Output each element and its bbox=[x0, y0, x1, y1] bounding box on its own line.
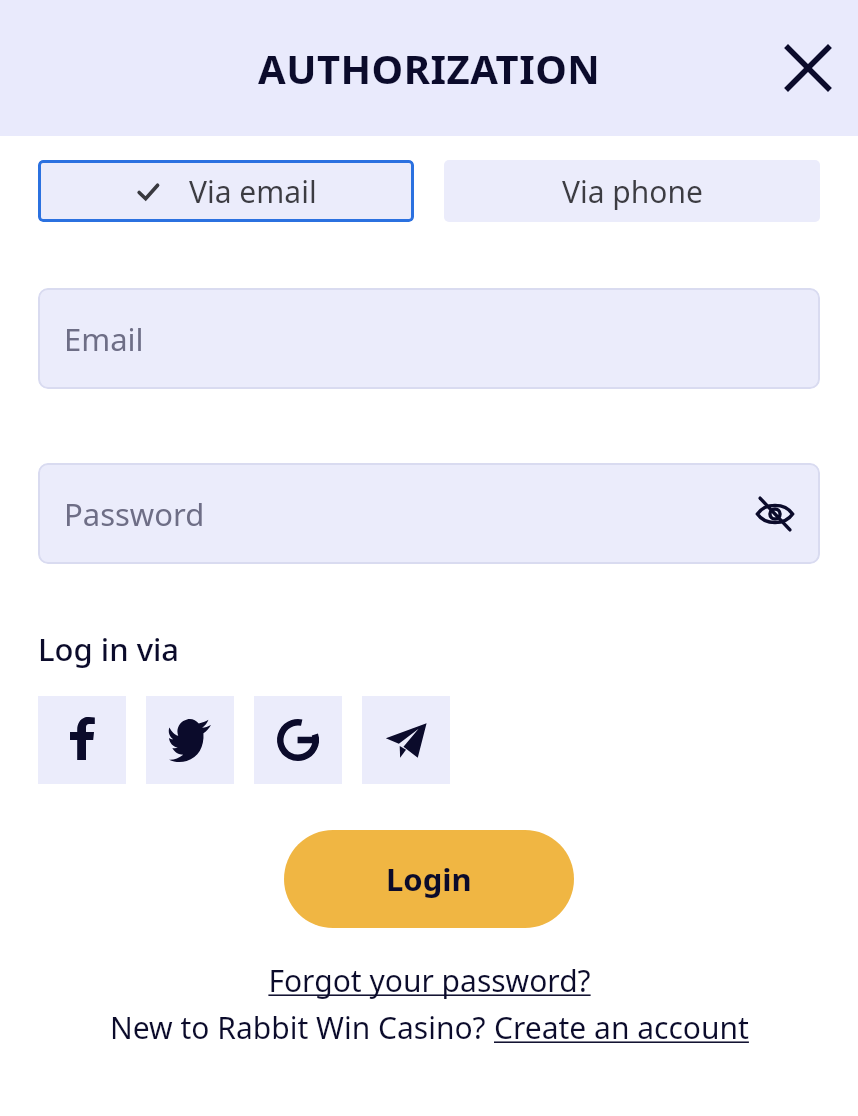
button[interactable]: Email bbox=[38, 288, 820, 389]
button[interactable]: Show password bbox=[744, 483, 806, 545]
staticText: Via email bbox=[189, 171, 317, 212]
button[interactable]: Close bbox=[772, 32, 844, 104]
staticText: New to Rabbit Win Casino? bbox=[110, 1007, 494, 1048]
staticText: AUTHORIZATION bbox=[258, 41, 601, 95]
button[interactable]: Create an account bbox=[494, 1007, 749, 1048]
button[interactable]: Twitter bbox=[146, 696, 234, 784]
button[interactable]: Telegram bbox=[362, 696, 450, 784]
button[interactable]: Login bbox=[284, 830, 574, 928]
staticText: Login bbox=[386, 858, 472, 900]
button[interactable]: Via phone bbox=[444, 160, 820, 222]
button[interactable]: Forgot your password? bbox=[268, 960, 591, 1001]
staticText: Log in via bbox=[38, 628, 180, 670]
button[interactable]: Password bbox=[38, 463, 820, 564]
button[interactable]: Facebook bbox=[38, 696, 126, 784]
button[interactable]: Google bbox=[254, 696, 342, 784]
button[interactable]: Via email bbox=[38, 160, 414, 222]
staticText: Password bbox=[64, 493, 205, 535]
staticText: Email bbox=[64, 318, 144, 360]
staticText: Via phone bbox=[562, 171, 703, 212]
